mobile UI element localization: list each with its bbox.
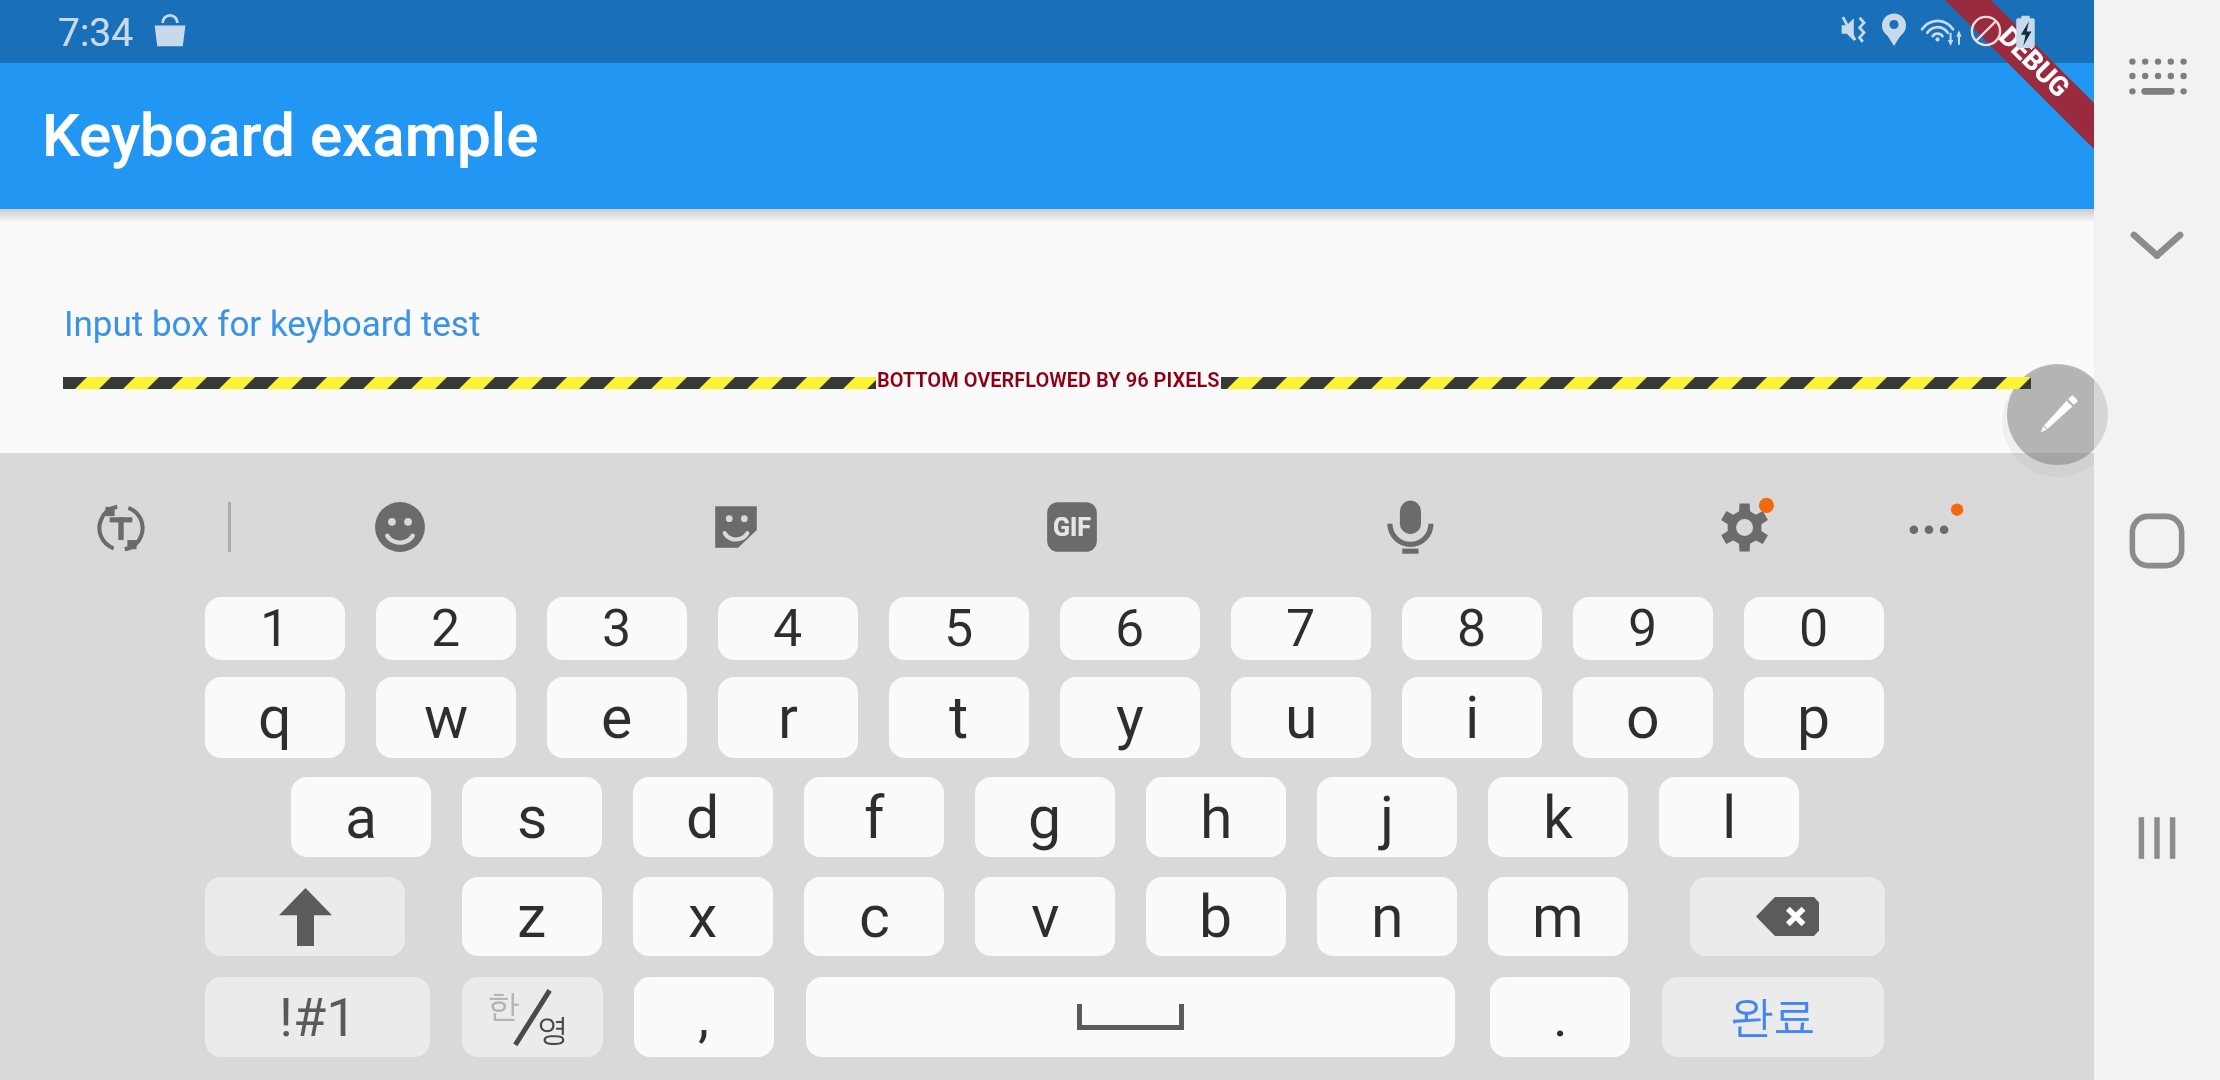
staticText: 7:34 [58,10,134,56]
staticText: r [778,683,798,752]
button[interactable]: i [1402,677,1542,758]
button[interactable]: f [804,777,944,857]
button[interactable]: Backspace [1690,877,1885,956]
button[interactable]: . [1490,977,1630,1057]
button[interactable]: 8 [1402,597,1542,660]
button[interactable]: 1 [205,597,345,660]
button[interactable]: 3 [547,597,687,660]
staticText: 한 [487,986,519,1026]
button[interactable]: w [376,677,516,758]
staticText: b [1199,882,1233,951]
button[interactable]: More options [1902,500,1956,554]
button[interactable]: v [975,877,1115,956]
button[interactable]: r [718,677,858,758]
staticText: o [1626,683,1660,752]
staticText: , [698,984,710,1050]
staticText: y [1116,683,1144,752]
button[interactable]: b [1146,877,1286,956]
button[interactable]: 0 [1744,597,1884,660]
button[interactable]: Hide keyboard [2125,212,2189,276]
button[interactable]: GIF [1045,500,1099,554]
button[interactable]: Korean / English [462,977,603,1057]
button[interactable]: Home [2129,513,2185,569]
staticText: Input box for keyboard test [64,304,481,345]
button[interactable]: s [462,777,602,857]
staticText: . [1553,984,1568,1050]
button[interactable]: 4 [718,597,858,660]
staticText: u [1285,683,1318,752]
button[interactable]: Show keyboard [2126,52,2190,100]
staticText: g [1028,783,1062,852]
staticText: 7 [1286,598,1316,659]
button[interactable]: d [633,777,773,857]
staticText: x [688,882,718,951]
staticText: h [1200,783,1233,852]
staticText: i [1465,683,1480,752]
staticText: 6 [1115,598,1145,659]
button[interactable]: l [1659,777,1799,857]
button[interactable]: p [1744,677,1884,758]
staticText: l [1722,783,1737,852]
staticText: 완료 [1730,990,1816,1044]
button[interactable]: k [1488,777,1628,857]
button[interactable]: t [889,677,1029,758]
staticText: n [1371,882,1404,951]
button[interactable]: 7 [1231,597,1371,660]
button[interactable]: 2 [376,597,516,660]
staticText: 5 [944,598,974,659]
button[interactable]: 5 [889,597,1029,660]
staticText: v [1031,882,1060,951]
staticText: f [864,783,885,852]
button[interactable]: x [633,877,773,956]
button[interactable]: Edit [2007,364,2108,465]
staticText: 4 [773,598,803,659]
staticText: 0 [1799,598,1829,659]
staticText: GIF [1053,513,1092,542]
button[interactable]: 9 [1573,597,1713,660]
staticText: d [686,783,720,852]
button[interactable]: !#1 [205,977,430,1057]
button[interactable]: Voice input [1383,500,1437,554]
staticText: DEBUG [1992,20,2076,104]
button[interactable]: Space [806,977,1455,1057]
staticText: e [601,683,633,752]
staticText: q [258,683,292,752]
button[interactable]: 6 [1060,597,1200,660]
button[interactable]: 완료 [1662,977,1884,1057]
staticText: c [859,882,890,951]
button[interactable]: j [1317,777,1457,857]
button[interactable]: g [975,777,1115,857]
button[interactable]: o [1573,677,1713,758]
button[interactable]: c [804,877,944,956]
staticText: m [1532,882,1584,951]
staticText: 9 [1628,598,1658,659]
staticText: 3 [602,598,632,659]
staticText: !#1 [279,986,357,1049]
button[interactable]: Settings [1720,500,1774,554]
staticText: t [949,683,969,752]
button[interactable]: Stickers [710,501,762,553]
button[interactable]: m [1488,877,1628,956]
button[interactable]: Emoji [374,501,426,553]
button[interactable]: , [634,977,774,1057]
button[interactable]: e [547,677,687,758]
button[interactable]: a [291,777,431,857]
staticText: 8 [1457,598,1487,659]
staticText: s [517,783,548,852]
button[interactable]: Translate [94,500,148,554]
staticText: j [1380,783,1395,852]
button[interactable]: Shift [205,877,405,956]
button[interactable]: y [1060,677,1200,758]
button[interactable]: Recent apps [2131,812,2183,864]
staticText: a [345,783,378,852]
staticText: 2 [431,598,461,659]
button[interactable]: q [205,677,345,758]
button[interactable]: u [1231,677,1371,758]
staticText: 1 [260,598,290,659]
staticText: Keyboard example [42,100,539,170]
button[interactable]: h [1146,777,1286,857]
button[interactable]: z [462,877,602,956]
staticText: BOTTOM OVERFLOWED BY 96 PIXELS [877,368,1220,391]
button[interactable]: n [1317,877,1457,956]
staticText: p [1797,683,1831,752]
